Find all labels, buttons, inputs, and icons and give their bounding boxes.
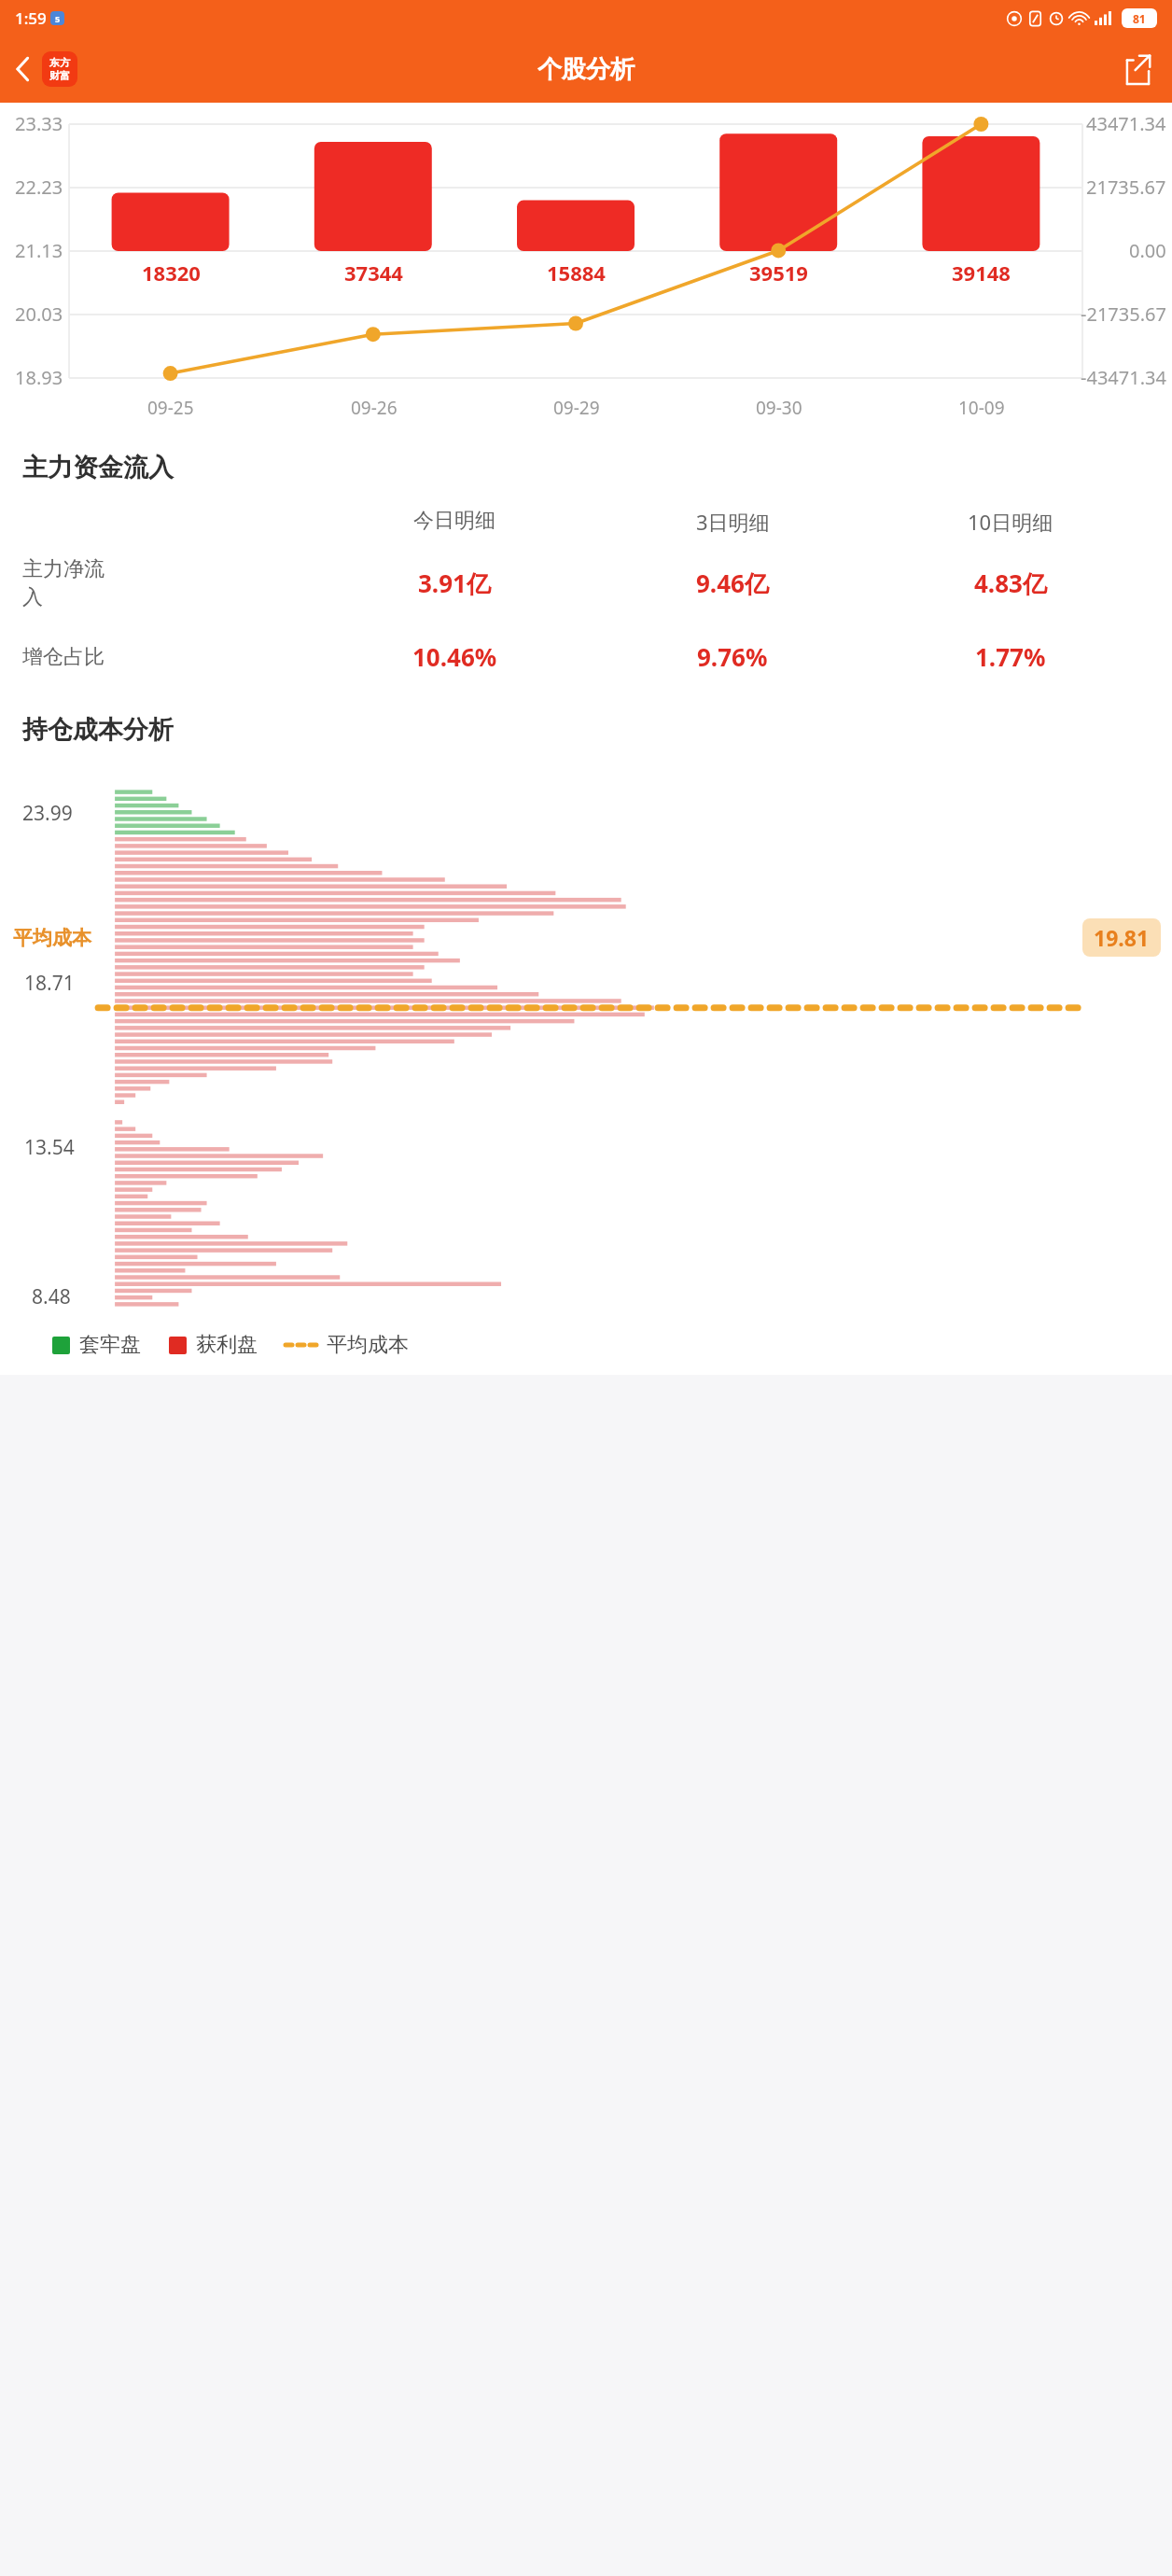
staticText: 20.03 [15,301,63,327]
staticText: 1.77% [975,640,1046,673]
staticText: 今日明细 [413,508,495,534]
staticText: 平均成本 [327,1332,409,1358]
staticText: 21735.67 [1086,175,1166,200]
staticText: 持仓成本分析 [22,714,174,746]
staticText: 平均成本 [13,926,91,950]
button[interactable]: 19.81 [1082,918,1161,957]
button[interactable]: 主力净流入 [22,556,1150,610]
staticText: 10日明细 [968,508,1053,536]
button[interactable]: Back [6,44,87,94]
staticText: 43471.34 [1086,111,1166,136]
staticText: 09-25 [147,396,194,420]
button[interactable]: 增仓占比 [22,640,1150,673]
staticText: 37344 [344,259,403,287]
staticText: 主力资金流入 [22,452,174,483]
staticText: 18.71 [24,970,75,997]
staticText: 09-30 [756,396,802,420]
staticText: 10.46% [412,640,497,673]
staticText: 9.76% [697,640,768,673]
staticText: 39519 [749,259,808,287]
staticText: 10-09 [958,396,1005,420]
staticText: 81 [1133,11,1146,26]
staticText: 09-26 [351,396,398,420]
staticText: 23.33 [15,111,63,136]
staticText: 18.93 [15,365,63,390]
staticText: 1:59 [15,7,47,29]
staticText: 21.13 [15,238,63,263]
button[interactable]: Share [1115,45,1161,94]
staticText: -21735.67 [1081,301,1166,327]
staticText: 09-29 [553,396,600,420]
staticText: 增仓占比 [22,644,105,670]
staticText: 22.23 [15,175,63,200]
staticText: 9.46亿 [696,567,769,600]
staticText: 23.99 [22,800,73,827]
staticText: 财富 [49,69,70,82]
staticText: 3.91亿 [418,567,491,600]
staticText: 19.81 [1094,923,1150,952]
staticText: 5 [55,13,61,24]
staticText: 获利盘 [196,1332,258,1358]
staticText: 东方 [49,56,70,69]
staticText: 15884 [547,259,606,287]
staticText: 39148 [952,259,1011,287]
staticText: -43471.34 [1081,365,1166,390]
staticText: 0.00 [1129,238,1166,263]
staticText: 8.48 [32,1283,71,1310]
staticText: 13.54 [24,1134,75,1161]
staticText: 18320 [142,259,201,287]
staticText: 4.83亿 [974,567,1047,600]
staticText: 个股分析 [537,54,635,85]
staticText: 3日明细 [696,508,770,536]
staticText: 主力净流入 [22,556,112,610]
staticText: 套牢盘 [79,1332,141,1358]
